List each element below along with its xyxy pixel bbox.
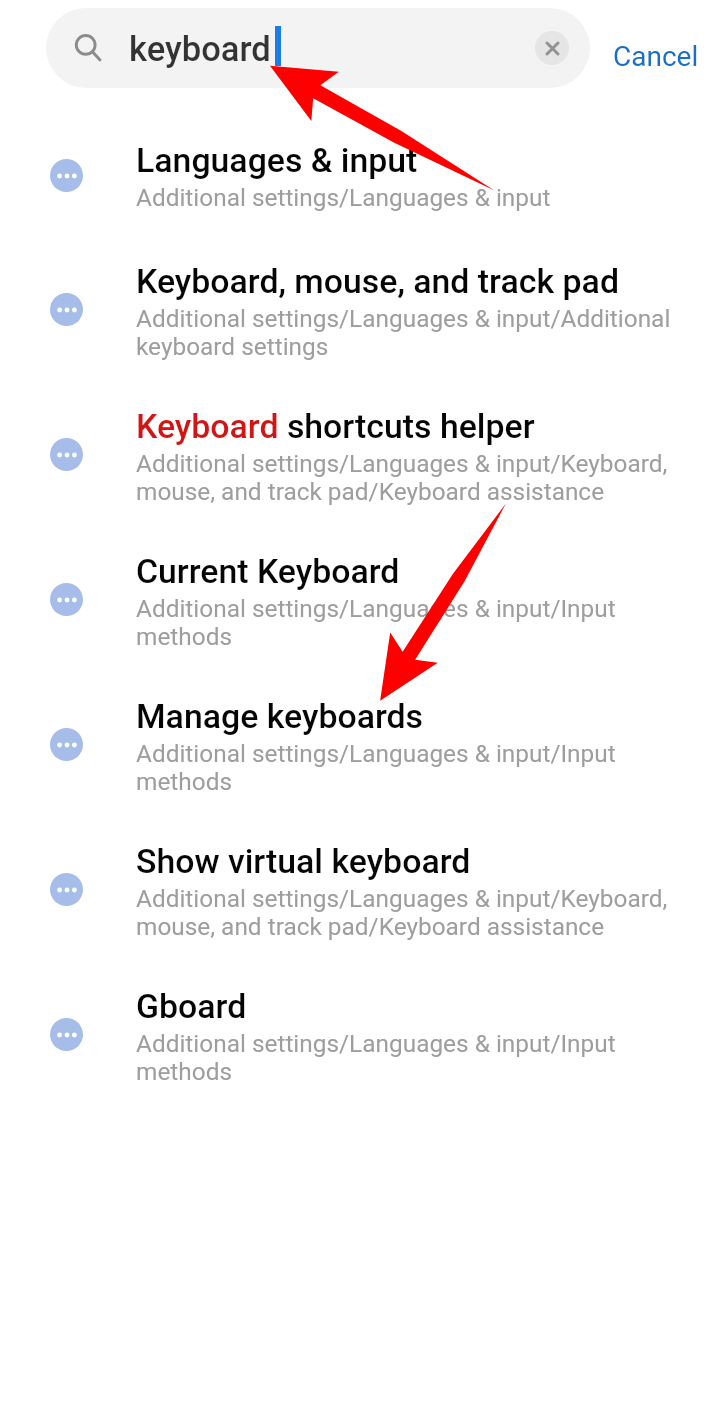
button[interactable]: Show virtual keyboard xyxy=(0,814,720,964)
staticText: Additional settings/Languages & input/In… xyxy=(136,740,692,796)
button[interactable]: Keyboard shortcuts helper xyxy=(0,379,720,529)
button[interactable]: Clear search xyxy=(535,31,569,65)
staticText: Keyboard, mouse, and track pad xyxy=(136,261,619,301)
button[interactable]: Languages & input xyxy=(0,100,720,250)
staticText: Additional settings/Languages & input/Ke… xyxy=(136,450,692,506)
staticText: Additional settings/Languages & input/Ad… xyxy=(136,305,692,361)
staticText: Gboard xyxy=(136,986,247,1026)
button[interactable]: Current Keyboard xyxy=(0,524,720,674)
staticText: keyboard xyxy=(129,29,271,69)
staticText: Languages & input xyxy=(136,140,418,180)
staticText: Additional settings/Languages & input/Ke… xyxy=(136,885,692,941)
staticText: Keyboard shortcuts helper xyxy=(136,406,535,446)
button[interactable]: Cancel xyxy=(606,24,706,88)
staticText: Additional settings/Languages & input/In… xyxy=(136,595,692,651)
staticText: Cancel xyxy=(613,40,699,73)
staticText: Additional settings/Languages & input xyxy=(136,184,551,212)
staticText: Manage keyboards xyxy=(136,696,424,736)
staticText: Current Keyboard xyxy=(136,551,400,591)
staticText: Additional settings/Languages & input/In… xyxy=(136,1030,692,1086)
button[interactable]: Manage keyboards xyxy=(0,669,720,819)
button[interactable]: keyboard xyxy=(46,8,590,88)
staticText: Show virtual keyboard xyxy=(136,841,471,881)
button[interactable]: Keyboard, mouse, and track pad xyxy=(0,234,720,384)
button[interactable]: Gboard xyxy=(0,959,720,1109)
